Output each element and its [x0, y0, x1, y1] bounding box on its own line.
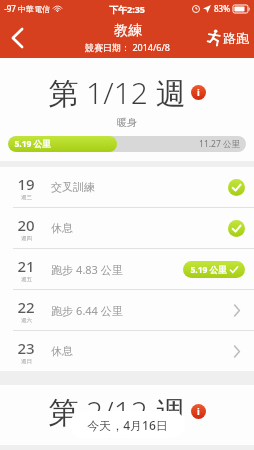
staticText: 休息 [51, 344, 73, 358]
staticText: 路跑 [223, 30, 249, 46]
staticText: 5.19 公里 [14, 138, 51, 150]
staticText: 週日 [21, 358, 32, 365]
staticText: 5.19 公里 [190, 264, 227, 276]
staticText: i [197, 405, 200, 418]
button[interactable]: Info [191, 85, 206, 100]
staticText: 下午2:35 [109, 3, 145, 15]
staticText: 23 [17, 338, 35, 358]
staticText: 週四 [21, 235, 32, 242]
staticText: 83% [214, 3, 230, 14]
button[interactable]: Info [191, 404, 206, 419]
staticText: 中華電信 [18, 4, 50, 14]
staticText: 跑步 4.83 公里 [51, 262, 123, 277]
button[interactable]: Back [0, 17, 34, 58]
staticText: 週三 [21, 194, 32, 201]
staticText: 第 1/12 週 [48, 72, 186, 113]
button[interactable]: 今天，4月16日 [70, 411, 185, 438]
staticText: 20 [17, 215, 35, 235]
staticText: 19 [17, 174, 35, 194]
button[interactable]: 20 [0, 208, 254, 248]
staticText: 第 2/12 週 [48, 391, 186, 432]
staticText: 競賽日期： 2014/6/8 [85, 41, 170, 53]
staticText: 週五 [21, 276, 32, 283]
button[interactable]: 23 [0, 331, 254, 371]
staticText: 暖身 [117, 116, 137, 129]
staticText: 今天，4月16日 [87, 417, 168, 433]
button[interactable]: Road run [207, 29, 249, 46]
staticText: 週六 [21, 317, 32, 324]
staticText: 穩定增加 [107, 427, 147, 440]
staticText: 11.27 公里 [199, 138, 240, 150]
button[interactable]: 19 [0, 167, 254, 207]
staticText: 休息 [51, 221, 73, 235]
button[interactable]: 21 [0, 249, 254, 289]
staticText: 教練 [114, 22, 142, 40]
staticText: 22 [17, 297, 35, 317]
staticText: -97 [4, 3, 16, 14]
staticText: 交叉訓練 [51, 180, 95, 194]
staticText: 跑步 6.44 公里 [51, 303, 123, 318]
staticText: i [197, 86, 200, 99]
button[interactable]: 22 [0, 290, 254, 330]
staticText: 21 [17, 256, 35, 276]
